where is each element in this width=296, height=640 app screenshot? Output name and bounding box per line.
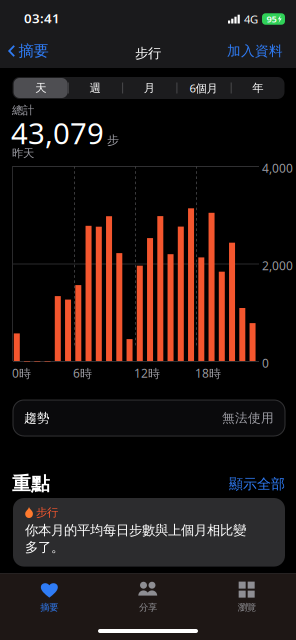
button[interactable]: 週 xyxy=(68,78,122,98)
staticText: 步行 xyxy=(135,45,161,62)
button[interactable]: 年 xyxy=(231,78,285,98)
staticText: 瀏覽 xyxy=(238,602,256,613)
staticText: 摘要 xyxy=(18,41,48,61)
button[interactable]: 加入資料 xyxy=(224,36,286,66)
button[interactable]: 天 xyxy=(13,78,68,98)
staticText: 趨勢 xyxy=(24,410,50,426)
button[interactable]: 摘要 xyxy=(0,575,99,619)
button[interactable]: 步行 xyxy=(13,498,285,567)
staticText: 95 xyxy=(266,13,276,25)
button[interactable]: 月 xyxy=(122,78,176,98)
button[interactable]: 分享 xyxy=(99,575,197,619)
staticText: 你本月的平均每日步數與上個月相比變多了。 xyxy=(25,522,246,556)
staticText: 步行 xyxy=(36,505,58,520)
staticText: 03:41 xyxy=(24,9,60,27)
staticText: 43,079 xyxy=(11,113,104,153)
staticText: 0 xyxy=(262,355,269,371)
staticText: 月 xyxy=(144,81,155,95)
button[interactable]: 瀏覽 xyxy=(197,575,296,619)
staticText: 步 xyxy=(107,133,119,148)
staticText: 6時 xyxy=(73,365,92,381)
staticText: 顯示全部 xyxy=(229,475,285,493)
button[interactable]: 摘要 xyxy=(0,36,56,66)
staticText: 重點 xyxy=(12,472,50,495)
staticText: 週 xyxy=(89,81,100,95)
staticText: 2,000 xyxy=(262,257,293,274)
staticText: 4G xyxy=(244,11,258,27)
staticText: 18時 xyxy=(195,365,221,381)
staticText: 分享 xyxy=(139,602,157,613)
staticText: 6個月 xyxy=(189,80,217,96)
staticText: 總計 xyxy=(12,103,34,117)
staticText: 無法使用 xyxy=(222,410,274,426)
staticText: 天 xyxy=(35,81,46,95)
staticText: 4,000 xyxy=(262,160,293,176)
button[interactable]: 趨勢 xyxy=(13,400,285,436)
staticText: 年 xyxy=(252,81,263,95)
staticText: 昨天 xyxy=(12,146,34,160)
staticText: 0時 xyxy=(12,365,31,381)
staticText: 摘要 xyxy=(40,602,58,613)
staticText: 12時 xyxy=(134,365,160,381)
button[interactable]: 6個月 xyxy=(176,78,231,98)
staticText: 加入資料 xyxy=(227,42,283,59)
button[interactable]: 顯示全部 xyxy=(215,475,285,493)
